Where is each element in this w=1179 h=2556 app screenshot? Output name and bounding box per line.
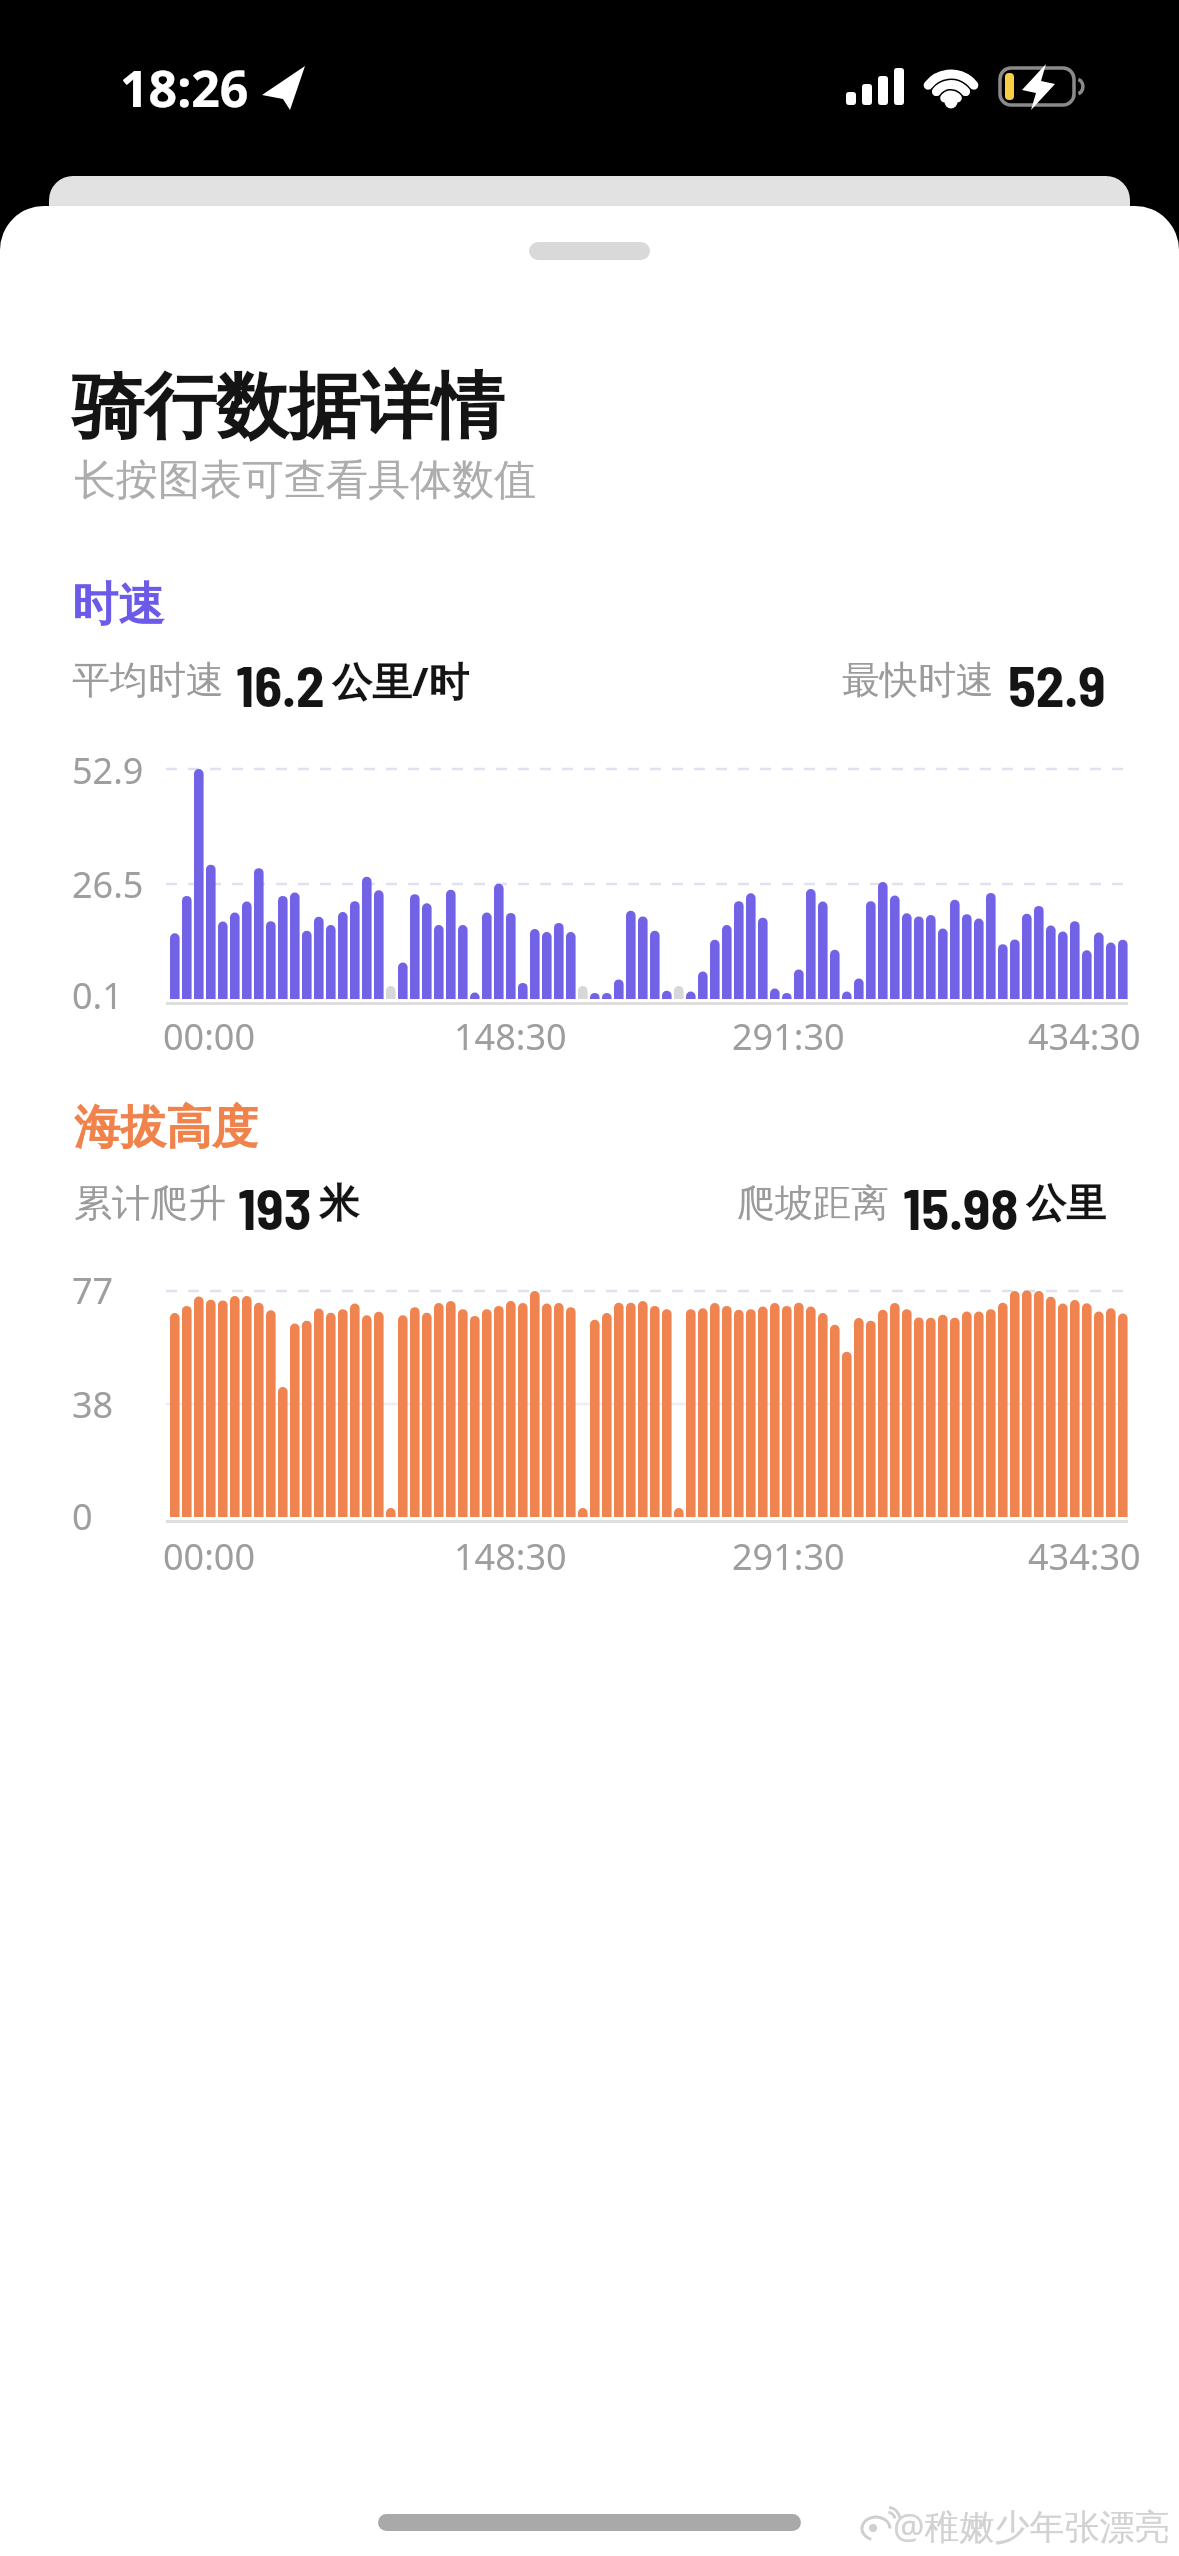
staticText: 77 — [72, 1266, 114, 1315]
staticText: 148:30 — [454, 1012, 567, 1061]
staticText: 0.1 — [72, 971, 123, 1020]
staticText: 累计爬升 — [74, 1179, 226, 1227]
staticText: 193 — [238, 1173, 312, 1233]
staticText: 最快时速 — [842, 656, 994, 704]
button[interactable] — [529, 242, 650, 260]
staticText: @稚嫩少年张漂亮 — [893, 2502, 1170, 2550]
button[interactable] — [378, 2514, 801, 2531]
staticText: 16.2 — [236, 650, 325, 710]
staticText: 00:00 — [163, 1012, 256, 1061]
staticText: 434:30 — [1028, 1012, 1141, 1061]
staticText: 爬坡距离 — [737, 1179, 889, 1227]
staticText: 海拔高度 — [74, 1099, 258, 1157]
staticText: 长按图表可查看具体数值 — [74, 454, 536, 507]
staticText: 291:30 — [732, 1012, 845, 1061]
staticText: 米 — [319, 1178, 359, 1228]
staticText: 公里 — [1026, 1178, 1106, 1228]
staticText: 0 — [72, 1492, 93, 1541]
staticText: 291:30 — [732, 1532, 845, 1581]
staticText: 00:00 — [163, 1532, 256, 1581]
staticText: 公里/时 — [332, 653, 469, 708]
staticText: 15.98 — [903, 1173, 1019, 1233]
staticText: 骑行数据详情 — [72, 362, 504, 453]
staticText: 52.9 — [1008, 650, 1106, 710]
staticText: 52.9 — [72, 746, 144, 795]
staticText: 平均时速 — [72, 656, 224, 704]
staticText: 148:30 — [454, 1532, 567, 1581]
staticText: 时速 — [72, 576, 164, 634]
staticText: 26.5 — [72, 860, 144, 909]
staticText: 38 — [72, 1380, 114, 1429]
staticText: 434:30 — [1028, 1532, 1141, 1581]
staticText: 18:26 — [120, 54, 249, 122]
